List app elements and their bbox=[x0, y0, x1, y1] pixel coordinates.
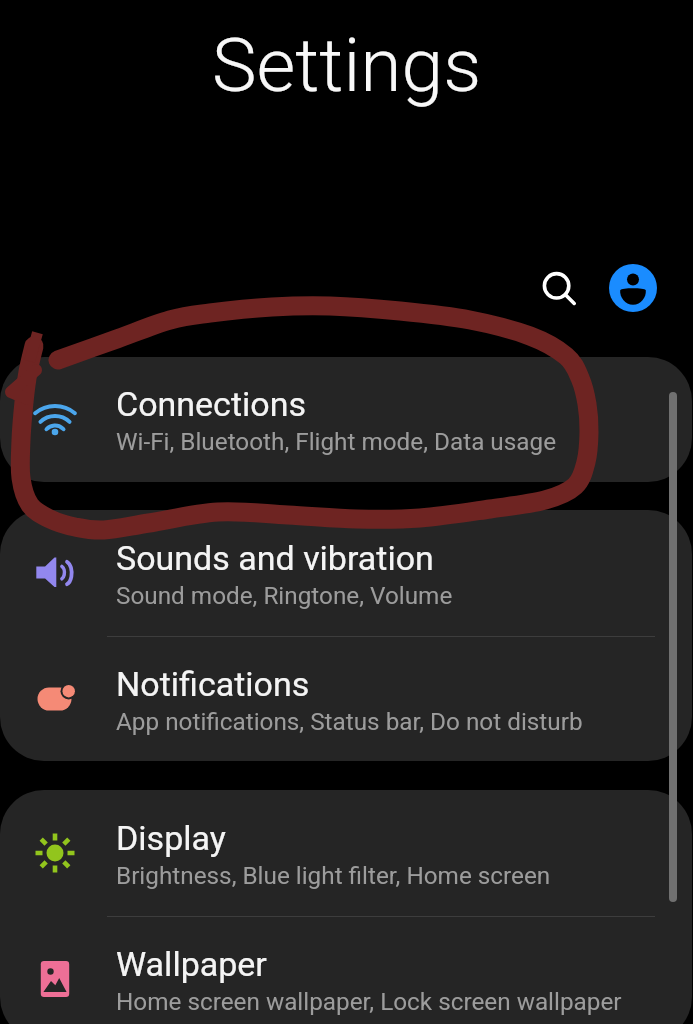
staticText: Display bbox=[116, 818, 226, 858]
staticText: Home screen wallpaper, Lock screen wallp… bbox=[116, 987, 622, 1015]
button[interactable]: Display bbox=[0, 790, 692, 916]
staticText: Sounds and vibration bbox=[116, 538, 434, 578]
button[interactable]: Search bbox=[530, 260, 588, 318]
staticText: Brightness, Blue light filter, Home scre… bbox=[116, 861, 551, 889]
staticText: Connections bbox=[116, 384, 307, 424]
button[interactable]: Account bbox=[604, 259, 662, 317]
button[interactable]: Connections bbox=[0, 357, 692, 482]
staticText: App notifications, Status bar, Do not di… bbox=[116, 707, 583, 735]
staticText: Settings bbox=[212, 21, 482, 109]
button[interactable]: Wallpaper bbox=[0, 916, 692, 1024]
staticText: Sound mode, Ringtone, Volume bbox=[116, 581, 453, 609]
staticText: Notifications bbox=[116, 664, 310, 704]
staticText: Wallpaper bbox=[116, 944, 267, 984]
staticText: Wi-Fi, Bluetooth, Flight mode, Data usag… bbox=[116, 427, 557, 455]
button[interactable]: Notifications bbox=[0, 636, 692, 761]
button[interactable]: Sounds and vibration bbox=[0, 510, 692, 636]
